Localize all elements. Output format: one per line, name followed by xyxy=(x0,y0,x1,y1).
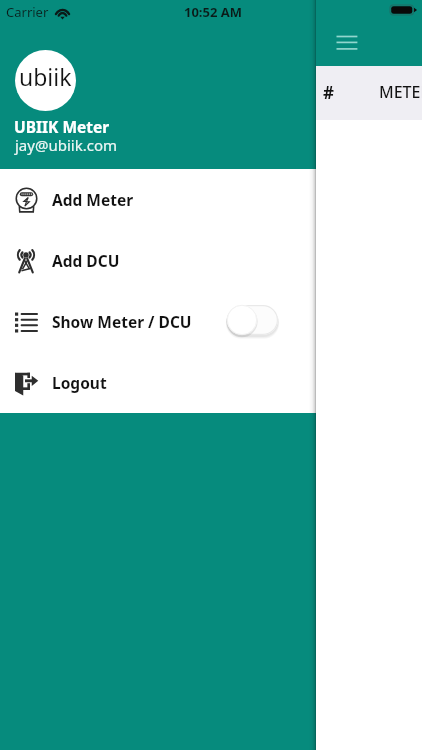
staticText: Add DCU xyxy=(52,250,120,271)
staticText: ubiik xyxy=(19,61,72,92)
button[interactable]: Open navigation menu xyxy=(330,29,364,63)
button[interactable]: Add DCU xyxy=(0,230,316,291)
staticText: jay@ubiik.com xyxy=(15,135,117,155)
staticText: Add Meter xyxy=(52,189,134,210)
staticText: 10:52 AM xyxy=(184,3,243,21)
staticText: METER xyxy=(379,81,422,103)
staticText: # xyxy=(323,81,334,104)
staticText: Carrier xyxy=(6,3,49,21)
button[interactable]: Logout xyxy=(0,352,316,413)
button[interactable]: Show Meter / DCU xyxy=(0,291,316,352)
staticText: Logout xyxy=(52,372,107,393)
staticText: Show Meter / DCU xyxy=(52,311,192,332)
staticText: UBIIK Meter xyxy=(14,116,110,137)
button[interactable]: Add Meter xyxy=(0,169,316,230)
button[interactable]: Show Meter / DCU toggle xyxy=(227,305,278,337)
